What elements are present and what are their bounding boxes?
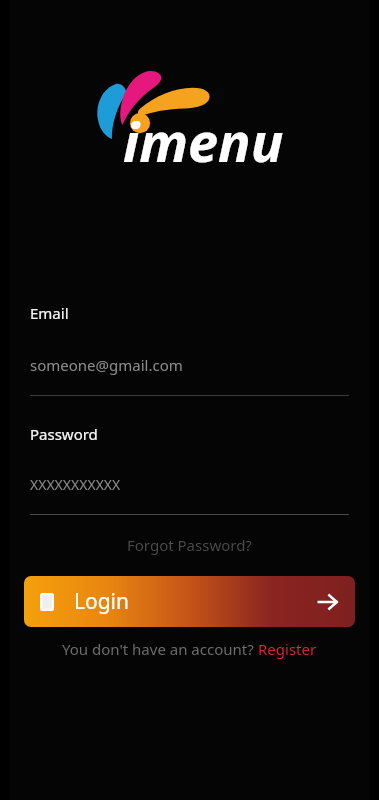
staticText: Register [258, 639, 317, 659]
button[interactable]: Login [24, 576, 355, 627]
staticText: You don't have an account? [62, 639, 258, 659]
staticText: someone@gmail.com [30, 355, 183, 375]
staticText: Login [74, 587, 130, 616]
staticText: Forgot Password? [127, 535, 252, 555]
button[interactable]: Forgot Password? [119, 531, 260, 559]
staticText: imenu [123, 104, 284, 178]
staticText: Email [30, 303, 69, 323]
other: Login [317, 591, 339, 613]
staticText: XXXXXXXXXXX [30, 475, 121, 494]
staticText: Password [30, 424, 98, 444]
button[interactable]: Register [258, 639, 317, 659]
